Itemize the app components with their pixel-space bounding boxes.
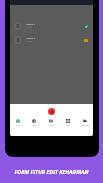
staticText: Nama 2: [26, 36, 36, 39]
button[interactable]: Record: [48, 108, 55, 115]
staticText: Nama 1: [26, 22, 36, 25]
staticText: 12 Jan: [26, 26, 32, 29]
staticText: Hub: [16, 124, 21, 127]
staticText: Weather: [80, 124, 90, 127]
staticText: Apps: [65, 124, 71, 127]
button[interactable]: Nama 1: [10, 19, 93, 33]
staticText: FORM FITUR EDIT KEHADIRAN: [0, 168, 103, 175]
staticText: Cam: [32, 124, 37, 127]
button[interactable]: News: [42, 104, 59, 136]
button[interactable]: Hub: [10, 104, 26, 136]
button[interactable]: Apps: [59, 104, 76, 136]
button[interactable]: Weather: [76, 104, 93, 136]
staticText: News: [48, 124, 54, 127]
button[interactable]: Cam: [26, 104, 42, 136]
button[interactable]: Nama 2: [10, 33, 93, 47]
staticText: 12 Jan: [26, 40, 32, 43]
